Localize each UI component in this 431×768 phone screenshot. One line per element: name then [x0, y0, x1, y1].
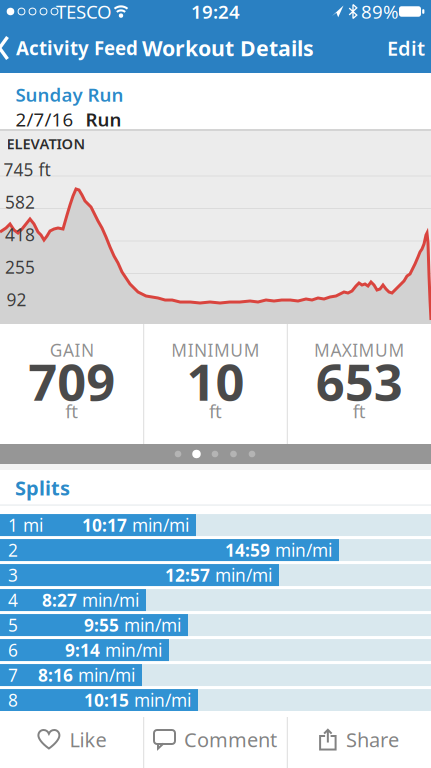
staticText: MAXIMUM: [314, 338, 404, 361]
button[interactable]: Activity Feed: [0, 23, 138, 72]
staticText: Share: [346, 726, 399, 753]
staticText: ft: [353, 399, 366, 423]
staticText: 2: [8, 539, 18, 562]
staticText: Like: [69, 726, 106, 753]
staticText: Workout Details: [142, 34, 314, 62]
staticText: Run: [85, 107, 121, 132]
staticText: 8:16: [38, 664, 73, 687]
staticText: ft: [209, 399, 222, 423]
staticText: min/mi: [73, 664, 135, 687]
staticText: 5: [8, 614, 18, 637]
button[interactable]: Share: [287, 711, 431, 768]
staticText: 19:24: [191, 0, 240, 24]
staticText: Activity Feed: [16, 36, 138, 60]
staticText: MINIMUM: [171, 338, 260, 361]
staticText: min/mi: [119, 614, 181, 637]
staticText: 10:17: [82, 514, 127, 537]
staticText: 92: [6, 288, 26, 311]
staticText: 2/7/16: [15, 107, 73, 132]
staticText: Sunday Run: [15, 82, 123, 107]
staticText: min/mi: [77, 589, 139, 612]
staticText: Comment: [184, 726, 277, 753]
button[interactable]: Comment: [144, 711, 287, 768]
staticText: 745 ft: [3, 158, 50, 181]
staticText: min/mi: [127, 514, 189, 537]
staticText: 10:15: [84, 689, 129, 712]
staticText: 582: [5, 190, 35, 213]
staticText: 1 mi: [8, 514, 43, 537]
staticText: min/mi: [210, 564, 272, 587]
staticText: ft: [65, 399, 78, 423]
staticText: 9:55: [84, 614, 119, 637]
staticText: 8: [8, 689, 18, 712]
staticText: 418: [5, 223, 35, 246]
staticText: GAIN: [50, 338, 94, 361]
staticText: 709: [28, 347, 115, 415]
staticText: 7: [8, 664, 18, 687]
staticText: 6: [8, 639, 18, 662]
staticText: 3: [8, 564, 18, 587]
staticText: 10: [186, 347, 244, 415]
button[interactable]: Edit: [387, 23, 425, 72]
staticText: Edit: [387, 35, 425, 61]
staticText: TESCO: [56, 0, 112, 24]
staticText: 12:57: [165, 564, 210, 587]
staticText: 89%: [361, 0, 399, 24]
staticText: Splits: [15, 474, 70, 501]
staticText: 9:14: [65, 639, 100, 662]
staticText: 14:59: [225, 539, 270, 562]
button[interactable]: Like: [0, 711, 144, 768]
staticText: ELEVATION: [6, 134, 85, 153]
staticText: min/mi: [129, 689, 191, 712]
staticText: 255: [5, 255, 35, 278]
staticText: 653: [316, 347, 403, 415]
staticText: min/mi: [270, 539, 332, 562]
staticText: min/mi: [100, 639, 162, 662]
staticText: 8:27: [42, 589, 77, 612]
staticText: 4: [8, 589, 18, 612]
